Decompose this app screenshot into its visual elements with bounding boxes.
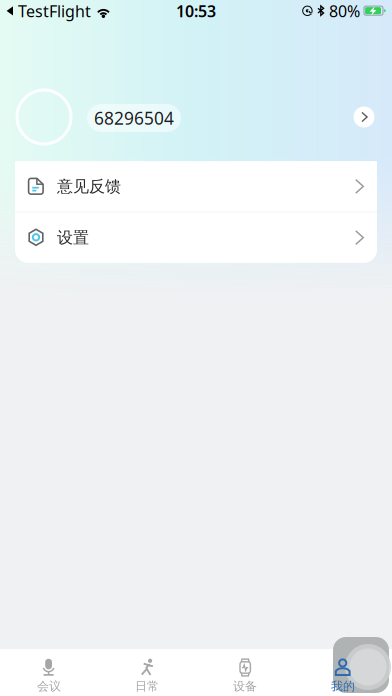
staticText: 意见反馈 (57, 177, 121, 196)
staticText: 日常 (135, 679, 159, 694)
staticText: TestFlight (18, 0, 91, 22)
staticText: 我的 (331, 679, 355, 694)
button[interactable]: 设置 (15, 212, 377, 263)
button[interactable]: 会议 (0, 649, 98, 696)
staticText: 68296504 (94, 106, 174, 129)
button[interactable]: 意见反馈 (15, 161, 377, 212)
staticText: 设备 (233, 679, 257, 694)
button[interactable]: 日常 (98, 649, 196, 696)
staticText: 80% (329, 0, 360, 22)
button[interactable]: 我的 (294, 649, 392, 696)
staticText: 会议 (37, 679, 61, 694)
button[interactable]: 设备 (196, 649, 294, 696)
button[interactable]: Account details (353, 106, 374, 127)
staticText: 设置 (57, 228, 89, 247)
staticText: 10:53 (176, 0, 216, 22)
